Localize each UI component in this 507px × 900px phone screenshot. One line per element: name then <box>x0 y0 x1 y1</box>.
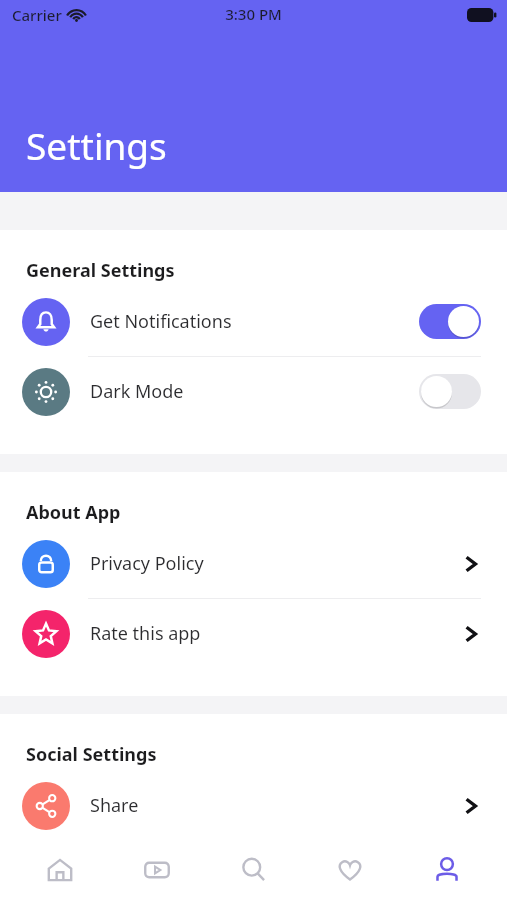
button[interactable]: Profile <box>410 840 484 900</box>
button[interactable]: Share <box>0 771 507 840</box>
other: Open <box>461 551 481 577</box>
staticText: Rate this app <box>90 621 461 646</box>
staticText: Social Settings <box>26 742 157 767</box>
staticText: General Settings <box>26 258 175 283</box>
button[interactable]: Privacy Policy <box>0 529 507 598</box>
other: Open <box>461 621 481 647</box>
button[interactable]: Toggle off <box>419 374 481 409</box>
staticText: Privacy Policy <box>90 551 461 576</box>
button[interactable]: Toggle on <box>419 304 481 339</box>
button[interactable]: Videos <box>120 840 194 900</box>
button[interactable]: Get Notifications <box>0 287 507 356</box>
staticText: Get Notifications <box>90 309 419 334</box>
staticText: 3:30 PM <box>225 4 282 24</box>
button[interactable]: Home <box>23 840 97 900</box>
staticText: Share <box>90 793 461 818</box>
button[interactable]: Dark Mode <box>0 357 507 426</box>
staticText: Dark Mode <box>90 379 419 404</box>
staticText: Settings <box>26 120 167 170</box>
button[interactable]: Rate this app <box>0 599 507 668</box>
button[interactable]: Search <box>217 840 291 900</box>
button[interactable]: Favorites <box>313 840 387 900</box>
other: Open <box>461 793 481 819</box>
staticText: About App <box>26 500 121 525</box>
staticText: Carrier <box>12 5 62 25</box>
